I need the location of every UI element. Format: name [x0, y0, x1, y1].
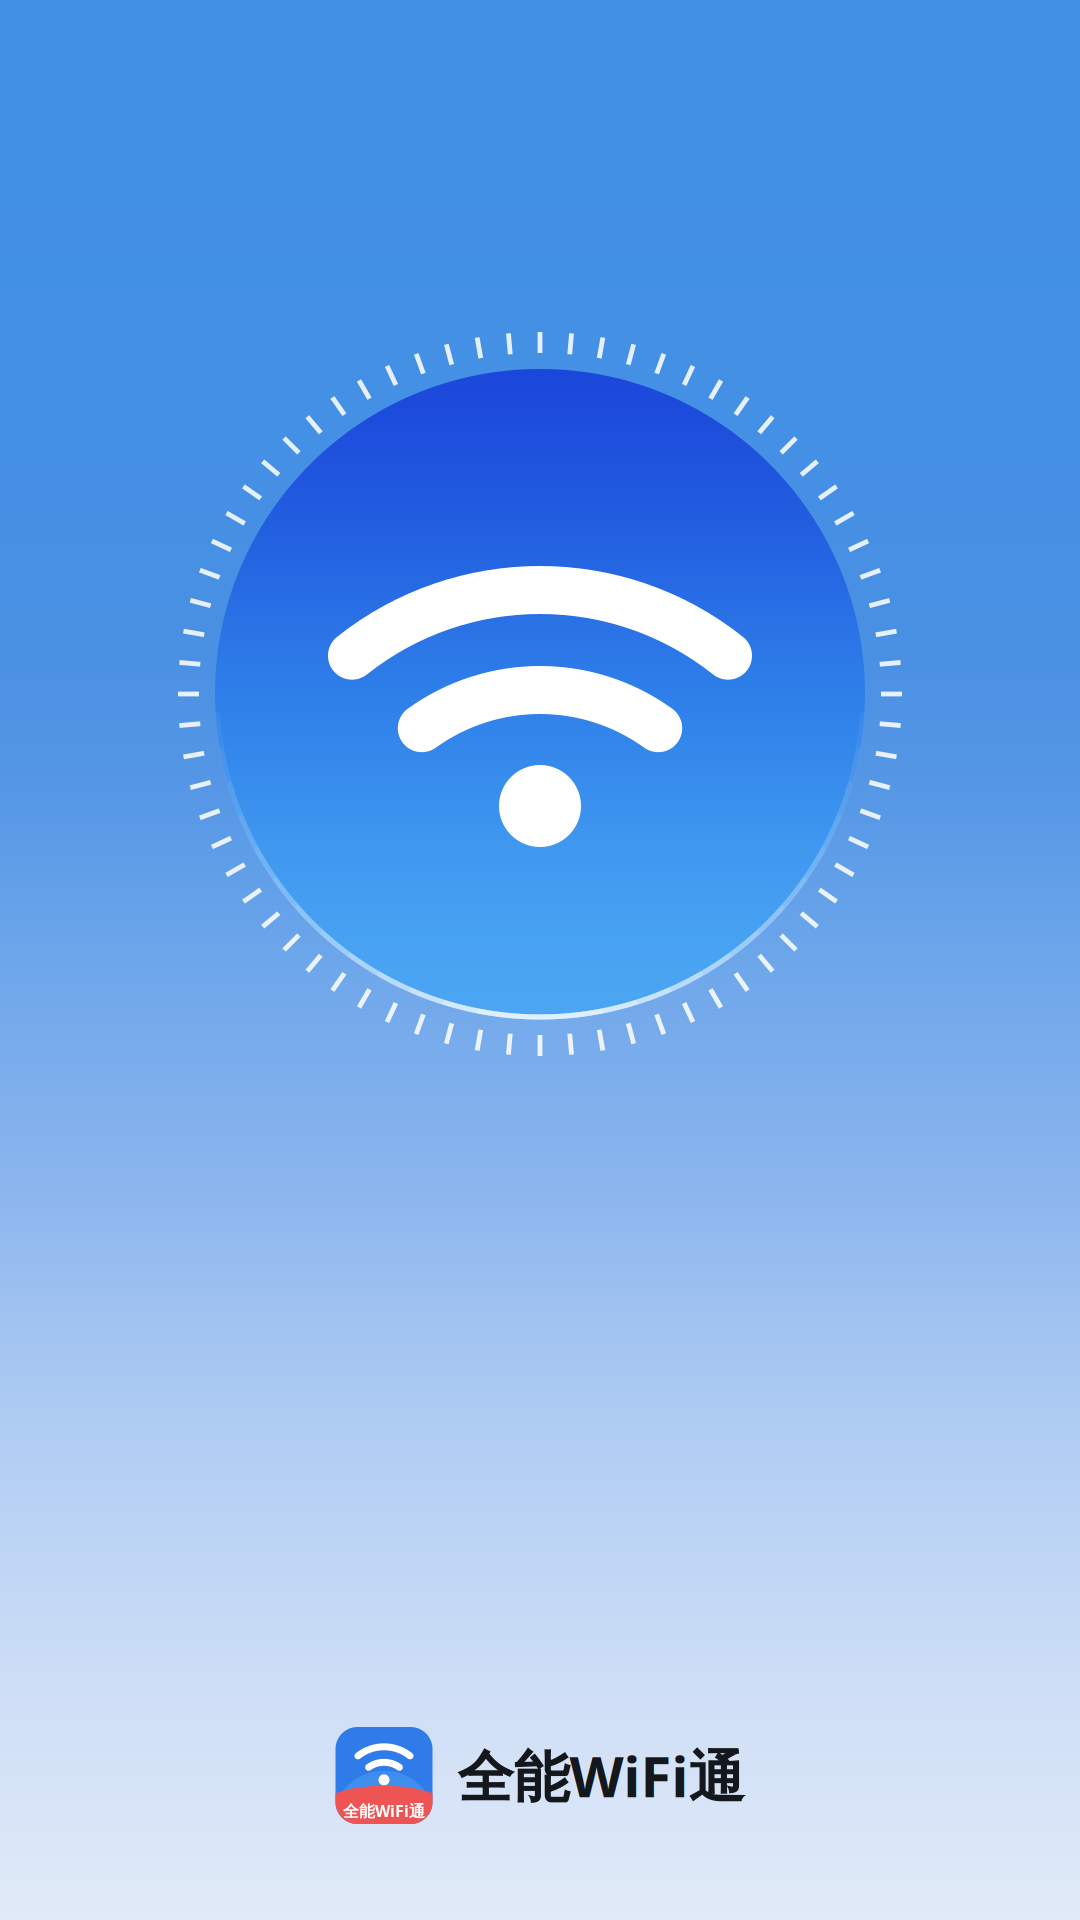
- staticText: 全能WiFi通: [343, 1800, 425, 1821]
- staticText: 全能WiFi通: [457, 1738, 744, 1813]
